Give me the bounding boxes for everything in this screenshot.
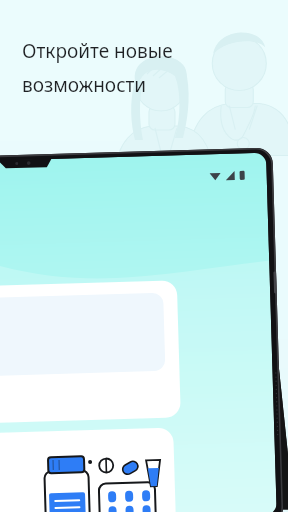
button[interactable]: Откройте новые возможности bbox=[0, 0, 288, 512]
